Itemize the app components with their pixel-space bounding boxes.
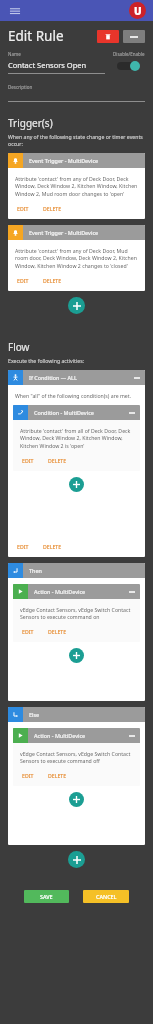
staticText: SAVE [40,893,53,900]
staticText: CANCEL [96,893,117,900]
button[interactable]: EDIT [15,542,31,551]
staticText: Attribute 'contact' from any of Deck Doo… [15,247,138,270]
staticText: Else [29,711,145,718]
button[interactable]: Action - MultiDevice [13,584,140,599]
staticText: U [134,4,142,18]
button[interactable]: Add [69,477,84,492]
button[interactable]: Add [68,297,85,314]
staticText: Description [8,84,33,90]
button[interactable]: DELETE [46,771,69,780]
button[interactable]: EDIT [20,771,36,780]
staticText: When any of the following state change o… [8,133,145,147]
staticText: DELETE [48,457,67,464]
button[interactable]: Enable toggle [117,61,141,71]
staticText: EDIT [17,543,29,550]
staticText: Flow [8,340,30,354]
staticText: EDIT [22,772,34,779]
button[interactable]: Else [8,707,145,722]
staticText: Then [29,567,145,574]
button[interactable]: Logo [129,2,146,19]
staticText: Edit Rule [8,27,97,45]
staticText: EDIT [17,277,29,284]
staticText: Event Trigger - MultiDevice [29,229,145,236]
staticText: EDIT [22,628,34,635]
staticText: EDIT [22,457,34,464]
button[interactable]: EDIT [20,627,36,636]
button[interactable]: Delete rule [97,30,119,43]
staticText: EDIT [17,205,29,212]
button[interactable]: Event Trigger - MultiDevice [8,225,145,240]
button[interactable]: EDIT [15,204,31,213]
staticText: DELETE [43,277,62,284]
button[interactable]: DELETE [41,204,64,213]
staticText: DELETE [43,205,62,212]
button[interactable]: DELETE [41,276,64,285]
staticText: Action - MultiDevice [34,588,129,595]
button[interactable]: Condition - MultiDevice [13,405,140,420]
button[interactable]: Event Trigger - MultiDevice [8,153,145,168]
staticText: Event Trigger - MultiDevice [29,157,145,164]
button[interactable]: EDIT [15,276,31,285]
button[interactable]: Menu [8,4,22,18]
staticText: When "all" of the following condition(s)… [15,392,132,399]
staticText: If Condition — ALL [29,374,134,381]
staticText: DELETE [43,543,62,550]
button[interactable]: SAVE [24,890,69,903]
staticText: Execute the following activities: [8,357,85,364]
staticText: DELETE [48,772,67,779]
button[interactable]: DELETE [46,456,69,465]
button[interactable]: CANCEL [83,890,129,903]
button[interactable]: DELETE [46,627,69,636]
button[interactable]: Add [68,851,85,868]
button[interactable]: Collapse [123,30,145,43]
button[interactable]: Add [69,792,84,807]
staticText: Contact Sensors Open [8,60,87,70]
staticText: Condition - MultiDevice [34,409,129,416]
button[interactable]: EDIT [20,456,36,465]
staticText: vEdge Contact Sensors, vEdge Switch Cont… [20,606,133,621]
staticText: Attribute 'contact' from any of Deck Doo… [15,175,138,198]
staticText: Name [8,51,21,57]
staticText: Attribute 'contact' from all of Deck Doo… [20,427,133,450]
staticText: Action - MultiDevice [34,732,129,739]
staticText: Disable/Enable [113,51,145,57]
staticText: DELETE [48,628,67,635]
staticText: vEdge Contact Sensors, vEdge Switch Cont… [20,750,133,765]
button[interactable]: If Condition — ALL [8,370,145,385]
button[interactable]: DELETE [41,542,64,551]
button[interactable]: Action - MultiDevice [13,728,140,743]
button[interactable]: Add [69,648,84,663]
button[interactable]: Then [8,563,145,578]
staticText: Trigger(s) [8,116,53,130]
